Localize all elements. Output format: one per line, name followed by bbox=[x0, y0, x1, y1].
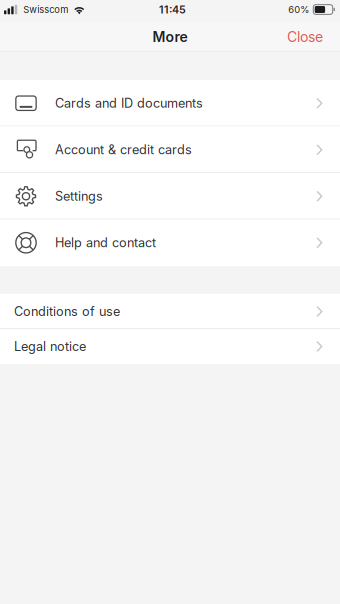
staticText: 11:45 bbox=[159, 3, 186, 16]
staticText: Conditions of use bbox=[14, 304, 120, 319]
button[interactable]: Help and contact bbox=[0, 219, 340, 266]
button[interactable]: Close bbox=[287, 22, 340, 51]
staticText: Account & credit cards bbox=[55, 142, 192, 157]
button[interactable]: Settings bbox=[0, 173, 340, 219]
button[interactable]: Cards and ID documents bbox=[0, 80, 340, 126]
staticText: Legal notice bbox=[14, 339, 86, 354]
staticText: Cards and ID documents bbox=[55, 96, 203, 111]
button[interactable]: Conditions of use bbox=[0, 294, 340, 329]
staticText: Close bbox=[287, 28, 323, 45]
staticText: More bbox=[152, 28, 187, 45]
button[interactable]: Account & credit cards bbox=[0, 126, 340, 173]
staticText: Swisscom bbox=[23, 4, 68, 15]
staticText: 60% bbox=[288, 4, 309, 15]
staticText: Settings bbox=[55, 189, 103, 204]
button[interactable]: Legal notice bbox=[0, 329, 340, 364]
staticText: Help and contact bbox=[55, 235, 156, 250]
